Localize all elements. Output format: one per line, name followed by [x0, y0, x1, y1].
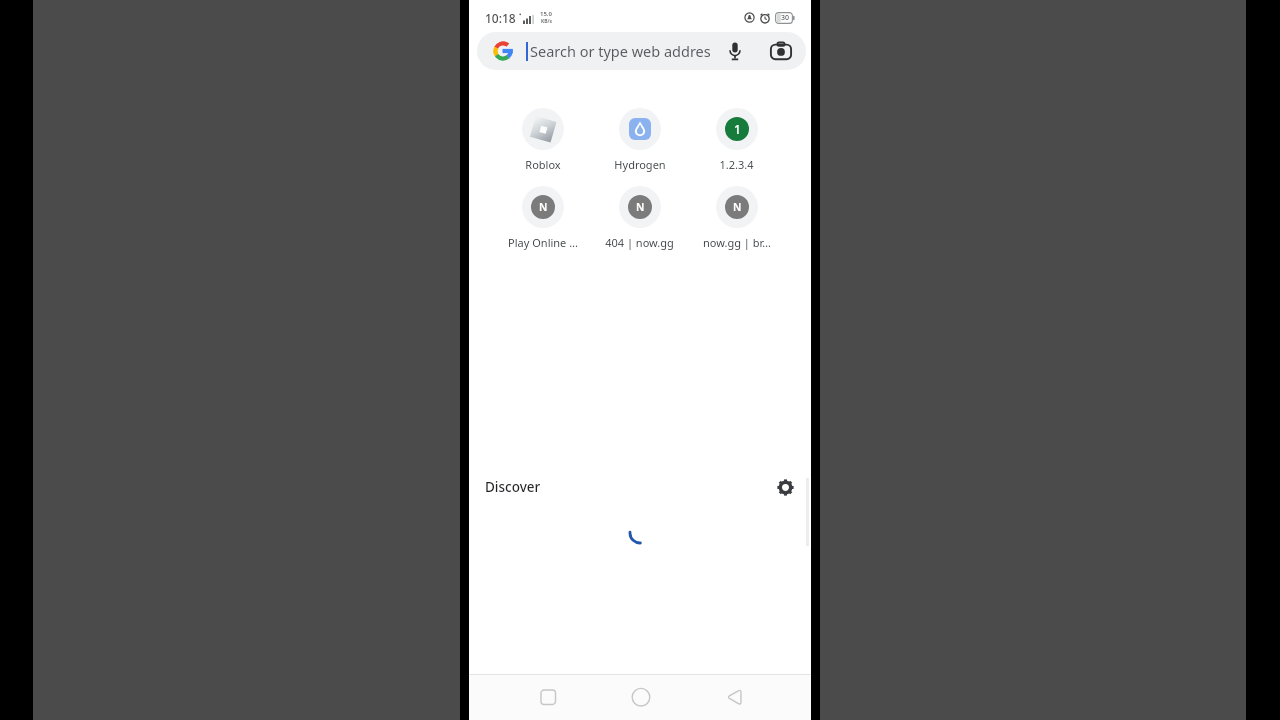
button[interactable]: N [591, 186, 688, 250]
staticText: KB/s [541, 18, 552, 25]
staticText: Roblox [525, 157, 561, 172]
staticText: N [636, 200, 645, 214]
button[interactable]: N [494, 186, 591, 250]
button[interactable] [777, 479, 794, 496]
button[interactable]: 1 [688, 108, 785, 172]
staticText: now.gg | br… [703, 235, 771, 250]
staticText: Play Online … [508, 235, 578, 250]
button[interactable] [533, 683, 563, 713]
staticText: N [539, 200, 548, 214]
staticText: Discover [485, 478, 541, 496]
staticText: 10:18 [485, 10, 516, 26]
staticText: 404 | now.gg [605, 235, 674, 250]
staticText: Hydrogen [614, 157, 666, 172]
staticText: 15.0 [540, 10, 552, 18]
button[interactable]: N [688, 186, 785, 250]
staticText: Search or type web addres [530, 41, 711, 61]
button[interactable]: Roblox [494, 108, 591, 172]
button[interactable] [626, 683, 656, 713]
staticText: N [733, 200, 742, 214]
staticText: 30 [781, 13, 790, 23]
button[interactable]: Search or type web addres [477, 32, 806, 70]
button[interactable]: Hydrogen [591, 108, 688, 172]
button[interactable] [719, 683, 749, 713]
staticText: 1 [734, 121, 741, 137]
staticText: 1.2.3.4 [719, 157, 754, 172]
